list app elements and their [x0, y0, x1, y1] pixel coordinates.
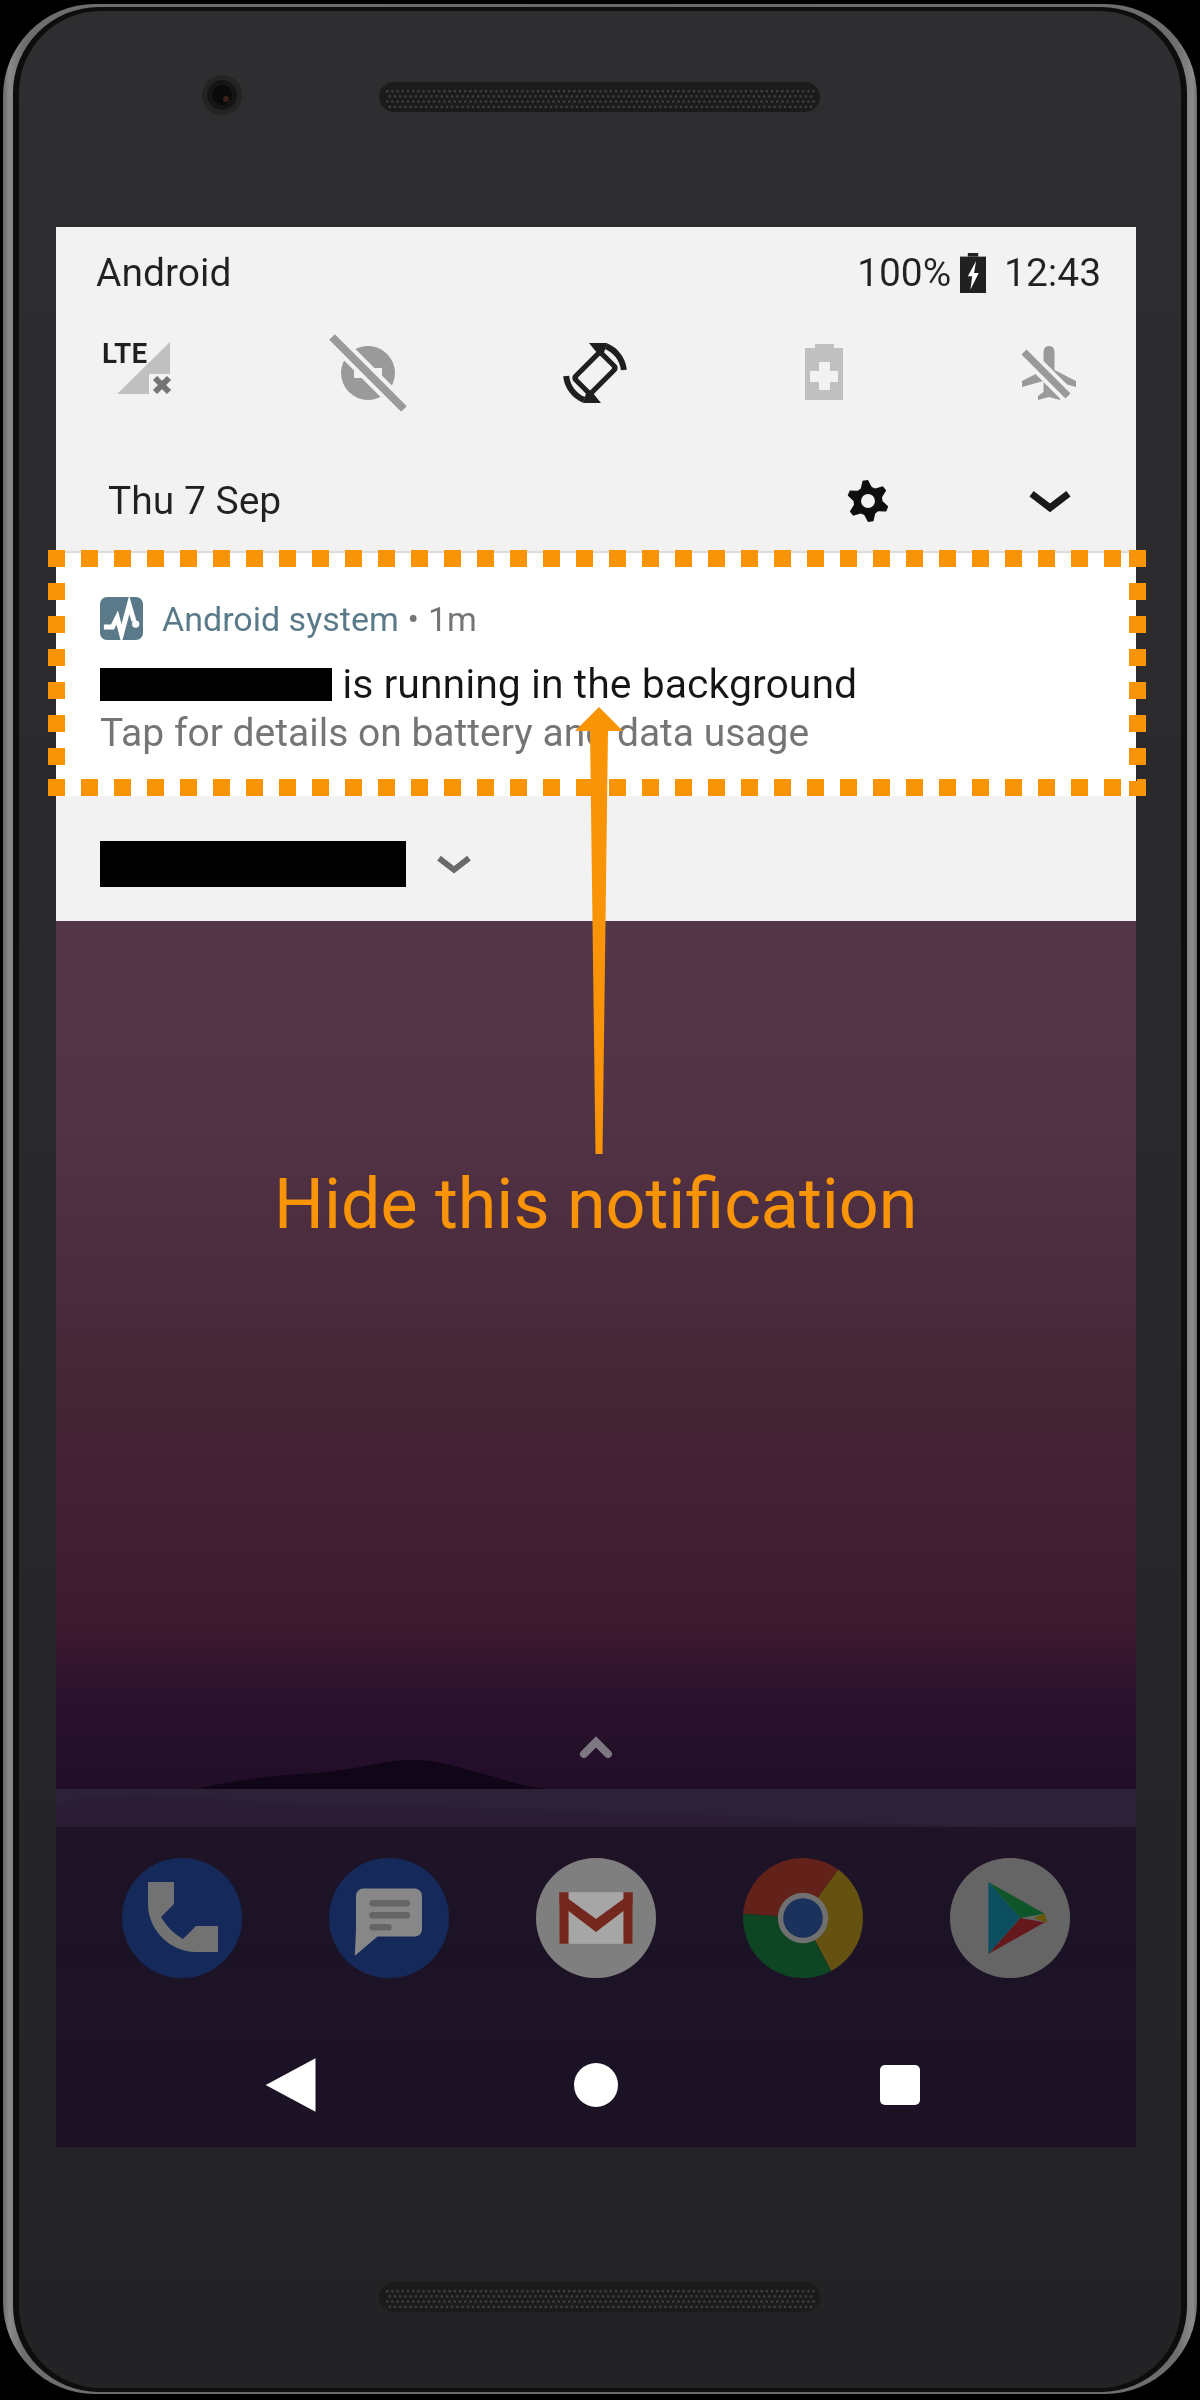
staticText: Android system: [162, 599, 399, 639]
button[interactable]: Android system: [56, 553, 1136, 796]
staticText: •: [399, 599, 428, 639]
staticText: Android: [96, 250, 232, 296]
button[interactable]: Expand quick settings: [1004, 455, 1096, 547]
staticText: Tap for details on battery and data usag…: [100, 710, 810, 756]
button[interactable]: Settings: [822, 455, 914, 547]
button[interactable]: [56, 796, 1136, 921]
staticText: 100%: [857, 250, 952, 296]
staticText: 12:43: [1004, 250, 1102, 296]
staticText: Thu 7 Sep: [108, 478, 282, 524]
staticText: is running in the background: [332, 660, 858, 708]
staticText: Hide this notification: [274, 1163, 918, 1245]
staticText: 1m: [428, 599, 477, 639]
staticText: LTE: [102, 337, 148, 370]
